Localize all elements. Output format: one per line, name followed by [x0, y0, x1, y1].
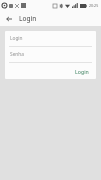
button[interactable]: Back — [3, 13, 14, 24]
button[interactable]: Login — [72, 66, 92, 77]
staticText: Login — [75, 68, 89, 75]
staticText: Senha — [10, 51, 24, 58]
button[interactable]: Senha — [5, 47, 96, 62]
staticText: Login — [19, 14, 37, 23]
button[interactable]: Login — [5, 31, 96, 46]
staticText: Login — [10, 35, 23, 42]
staticText: 20:25 — [89, 3, 99, 8]
